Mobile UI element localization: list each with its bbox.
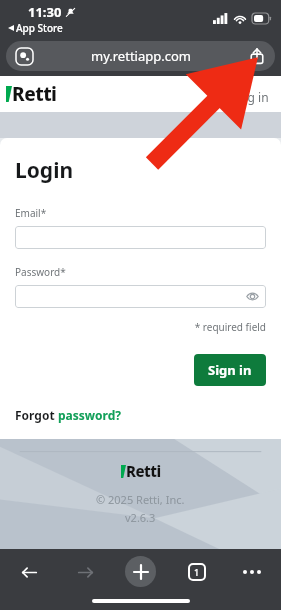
staticText: Retti [12,81,57,107]
button[interactable]: Log in [230,85,273,109]
staticText: Sign in [208,361,252,379]
staticText: my.rettiapp.com [91,47,191,65]
staticText: App Store [16,21,63,35]
button[interactable]: Tabs [182,557,212,587]
button[interactable]: New tab [125,556,156,587]
staticText: password? [58,407,122,423]
staticText: 1 [194,566,200,578]
button[interactable]: Show password [246,290,259,303]
staticText: v2.6.3 [125,510,156,525]
button[interactable]: Forgot [15,407,122,423]
staticText: 11:30 [28,3,62,21]
staticText: Log in [234,89,269,105]
staticText: Password* [15,265,66,279]
button[interactable] [15,226,266,249]
button[interactable]: Page settings [6,41,275,71]
button[interactable]: Page settings [16,48,33,65]
button[interactable]: Sign in [194,354,266,386]
button[interactable]: Back [14,557,44,587]
button[interactable]: Show password [15,285,266,308]
staticText: © 2025 Retti, Inc. [96,492,185,507]
button[interactable]: Retti [6,81,57,107]
staticText: * required field [15,320,266,334]
staticText: Login [15,156,74,185]
button[interactable]: Forward [70,557,100,587]
button[interactable]: Share [249,48,265,64]
staticText: Retti [126,461,161,481]
button[interactable]: More [237,557,267,587]
staticText: Email* [15,206,47,220]
staticText: Forgot [15,407,58,423]
